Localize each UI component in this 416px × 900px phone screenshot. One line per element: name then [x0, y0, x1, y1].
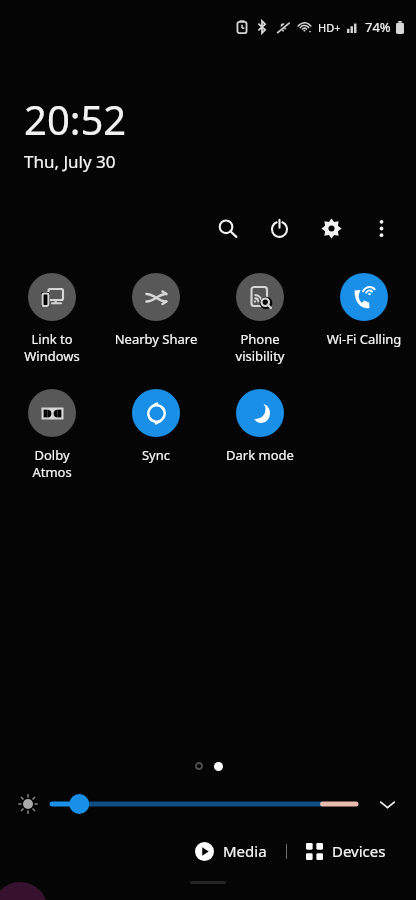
- button[interactable]: Devices: [300, 837, 392, 865]
- button[interactable]: Phone visibility: [212, 271, 308, 367]
- staticText: Devices: [332, 841, 386, 861]
- button[interactable]: Dolby Atmos: [4, 387, 100, 483]
- staticText: 20:52: [24, 92, 127, 146]
- staticText: Dark mode: [212, 446, 308, 464]
- staticText: Sync: [108, 446, 204, 464]
- button[interactable]: [50, 791, 358, 817]
- staticText: Nearby Share: [108, 330, 204, 348]
- button[interactable]: Nearby Share: [108, 271, 204, 350]
- button[interactable]: Power: [260, 209, 298, 247]
- staticText: Phone visibility: [212, 330, 308, 365]
- staticText: HD+: [318, 20, 341, 35]
- button[interactable]: More options: [362, 209, 400, 247]
- staticText: Media: [223, 841, 267, 861]
- staticText: 74%: [365, 18, 391, 36]
- button[interactable]: Wi-Fi Calling: [316, 271, 412, 350]
- button[interactable]: [194, 761, 204, 771]
- staticText: Wi-Fi Calling: [316, 330, 412, 348]
- button[interactable]: Link to Windows: [4, 271, 100, 367]
- button[interactable]: Media: [189, 837, 273, 865]
- button[interactable]: Expand brightness settings: [370, 787, 404, 821]
- button[interactable]: Settings: [312, 209, 350, 247]
- button[interactable]: Dark mode: [212, 387, 308, 466]
- button[interactable]: Search: [208, 209, 246, 247]
- staticText: Dolby Atmos: [4, 446, 100, 481]
- staticText: Thu, July 30: [24, 150, 116, 173]
- button[interactable]: Sync: [108, 387, 204, 466]
- button[interactable]: [213, 761, 223, 771]
- staticText: Link to Windows: [4, 330, 100, 365]
